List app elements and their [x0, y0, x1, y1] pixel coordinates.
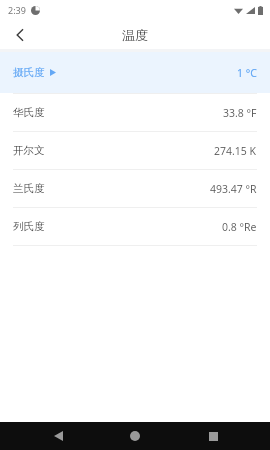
staticText: 摄氏度	[13, 66, 45, 79]
button[interactable]: Home	[115, 422, 155, 450]
button[interactable]: Back	[0, 20, 40, 49]
staticText: 0.8 °Re	[222, 220, 257, 234]
staticText: 开尔文	[13, 144, 45, 157]
staticText: 2:39	[8, 4, 26, 16]
button[interactable]: Back	[38, 422, 78, 450]
staticText: 华氏度	[13, 106, 45, 119]
button[interactable]: 兰氏度	[0, 170, 270, 207]
button[interactable]: 摄氏度	[0, 52, 270, 93]
staticText: 274.15 K	[214, 144, 257, 158]
staticText: 1 °C	[237, 66, 257, 80]
button[interactable]: 开尔文	[0, 132, 270, 169]
button[interactable]: Recent apps	[193, 422, 233, 450]
staticText: 列氏度	[13, 220, 45, 233]
staticText: 温度	[122, 27, 148, 43]
staticText: 兰氏度	[13, 182, 45, 195]
button[interactable]: 华氏度	[0, 94, 270, 131]
button[interactable]: 列氏度	[0, 208, 270, 245]
staticText: 33.8 °F	[223, 106, 257, 120]
staticText: 493.47 °R	[210, 182, 257, 196]
